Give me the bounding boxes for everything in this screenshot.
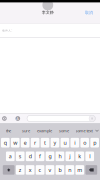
button[interactable]: p (90, 138, 99, 147)
button[interactable]: y (51, 138, 59, 147)
staticText: p (93, 139, 96, 146)
button[interactable]: 李文静 (36, 0, 60, 14)
staticText: u (63, 139, 66, 146)
button[interactable]: b (56, 165, 64, 175)
button[interactable]: some (54, 126, 74, 135)
staticText: some (59, 128, 69, 133)
staticText: A (16, 116, 19, 121)
staticText: b (58, 166, 61, 173)
button[interactable]: z (16, 165, 24, 175)
staticText: o (83, 139, 86, 146)
staticText: i (74, 139, 75, 146)
button[interactable]: Apps (15, 114, 21, 122)
staticText: l (89, 153, 90, 160)
button[interactable]: example (35, 126, 54, 135)
staticText: h (58, 153, 61, 160)
staticText: r (34, 139, 36, 146)
button[interactable]: n (65, 165, 74, 175)
staticText: e (24, 139, 27, 146)
button[interactable]: c (36, 165, 44, 175)
staticText: z (19, 166, 22, 173)
button[interactable]: v (46, 165, 54, 175)
button[interactable]: t (41, 138, 49, 147)
staticText: n (68, 166, 71, 173)
button[interactable]: j (65, 151, 74, 161)
staticText: x (29, 166, 32, 173)
button[interactable]: f (36, 151, 44, 161)
staticText: t (44, 139, 46, 146)
button[interactable]: u (61, 138, 69, 147)
button[interactable]: i (70, 138, 79, 147)
button[interactable]: e (21, 138, 29, 147)
staticText: v (48, 166, 51, 173)
button[interactable]: Delete (85, 165, 97, 175)
button[interactable]: Camera (1, 114, 8, 122)
button[interactable]: l (85, 151, 94, 161)
button[interactable]: some text (74, 126, 94, 135)
button[interactable]: Record audio message (89, 115, 95, 122)
staticText: k (78, 153, 81, 160)
button[interactable]: a (6, 151, 15, 161)
button[interactable]: h (56, 151, 64, 161)
staticText: 收件人: (2, 29, 12, 32)
staticText: g (48, 153, 51, 160)
button[interactable]: r (31, 138, 39, 147)
button[interactable]: q (1, 138, 10, 147)
staticText: w (13, 139, 17, 146)
button[interactable]: s (16, 151, 24, 161)
button[interactable]: d (26, 151, 34, 161)
staticText: m (77, 166, 82, 173)
button[interactable]: w (11, 138, 19, 147)
button[interactable]: m (75, 165, 84, 175)
staticText: a (9, 153, 12, 160)
button[interactable]: Shift (3, 165, 15, 175)
button[interactable]: x (26, 165, 34, 175)
staticText: example (37, 128, 52, 133)
staticText: j (69, 153, 70, 160)
button[interactable]: k (75, 151, 84, 161)
staticText: s (19, 153, 22, 160)
button[interactable]: o (80, 138, 89, 147)
staticText: the (6, 128, 11, 133)
button[interactable]: the (0, 126, 17, 135)
staticText: 取消 (85, 10, 93, 15)
button[interactable]: g (46, 151, 54, 161)
staticText: q (4, 139, 7, 146)
staticText: d (29, 153, 32, 160)
staticText: y (53, 139, 56, 146)
staticText: sure (22, 128, 30, 133)
staticText: some text (75, 128, 92, 133)
staticText: f (39, 153, 41, 160)
staticText: 李文静 (42, 10, 54, 15)
button[interactable]: 取消 (85, 11, 94, 15)
button[interactable]: Hide predictions (94, 126, 100, 135)
button[interactable]: sure (17, 126, 35, 135)
staticText: c (39, 166, 42, 173)
